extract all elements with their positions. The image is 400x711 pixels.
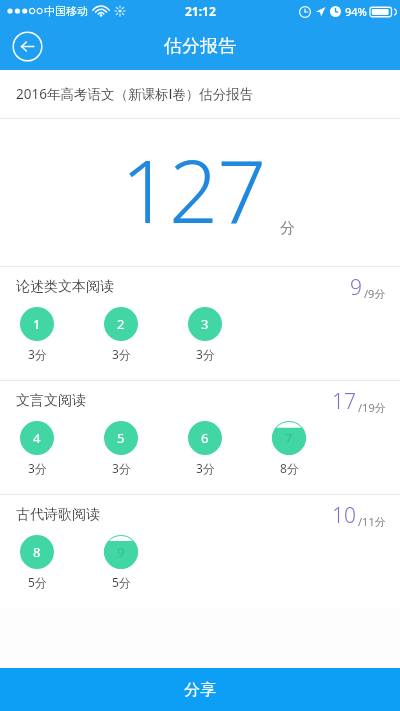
staticText: /19分 xyxy=(358,400,386,415)
staticText: 9 xyxy=(350,273,362,302)
staticText: 1 xyxy=(33,315,41,333)
staticText: 3分 xyxy=(112,346,131,362)
staticText: 中国移动 xyxy=(44,4,88,18)
staticText: 分享 xyxy=(184,680,216,700)
staticText: 3 xyxy=(201,315,209,333)
staticText: 8分 xyxy=(280,460,299,476)
staticText: 估分报告 xyxy=(164,35,236,58)
staticText: 6 xyxy=(201,429,209,447)
button[interactable]: 9 xyxy=(104,535,188,590)
staticText: 3分 xyxy=(28,346,47,362)
staticText: 古代诗歌阅读 xyxy=(16,506,100,524)
staticText: 3分 xyxy=(196,346,215,362)
button[interactable]: Back xyxy=(11,30,43,62)
button[interactable]: 6 xyxy=(188,421,272,476)
staticText: 3分 xyxy=(196,460,215,476)
button[interactable]: 4 xyxy=(20,421,104,476)
staticText: 3分 xyxy=(112,460,131,476)
staticText: 10 xyxy=(332,501,356,530)
staticText: 5 xyxy=(117,429,125,447)
staticText: 9 xyxy=(117,543,125,561)
button[interactable]: 1 xyxy=(20,307,104,362)
staticText: 2 xyxy=(117,315,125,333)
button[interactable]: 8 xyxy=(20,535,104,590)
staticText: /9分 xyxy=(364,286,386,301)
staticText: 文言文阅读 xyxy=(16,392,86,410)
staticText: 21:12 xyxy=(185,3,216,19)
staticText: 8 xyxy=(33,543,41,561)
staticText: 94% xyxy=(345,4,367,19)
button[interactable]: 5 xyxy=(104,421,188,476)
staticText: 17 xyxy=(332,387,356,416)
staticText: 127 xyxy=(121,131,266,248)
staticText: 5分 xyxy=(28,574,47,590)
button[interactable]: 7 xyxy=(272,421,356,476)
button[interactable]: 2 xyxy=(104,307,188,362)
staticText: 3分 xyxy=(28,460,47,476)
staticText: /11分 xyxy=(358,514,386,529)
staticText: 4 xyxy=(33,429,41,447)
button[interactable]: 3 xyxy=(188,307,272,362)
staticText: 论述类文本阅读 xyxy=(16,278,114,296)
staticText: 5分 xyxy=(112,574,131,590)
staticText: 分 xyxy=(280,219,295,238)
staticText: 7 xyxy=(285,429,293,447)
staticText: 2016年高考语文（新课标Ⅰ卷）估分报告 xyxy=(16,85,254,103)
button[interactable]: 分享 xyxy=(0,668,400,711)
